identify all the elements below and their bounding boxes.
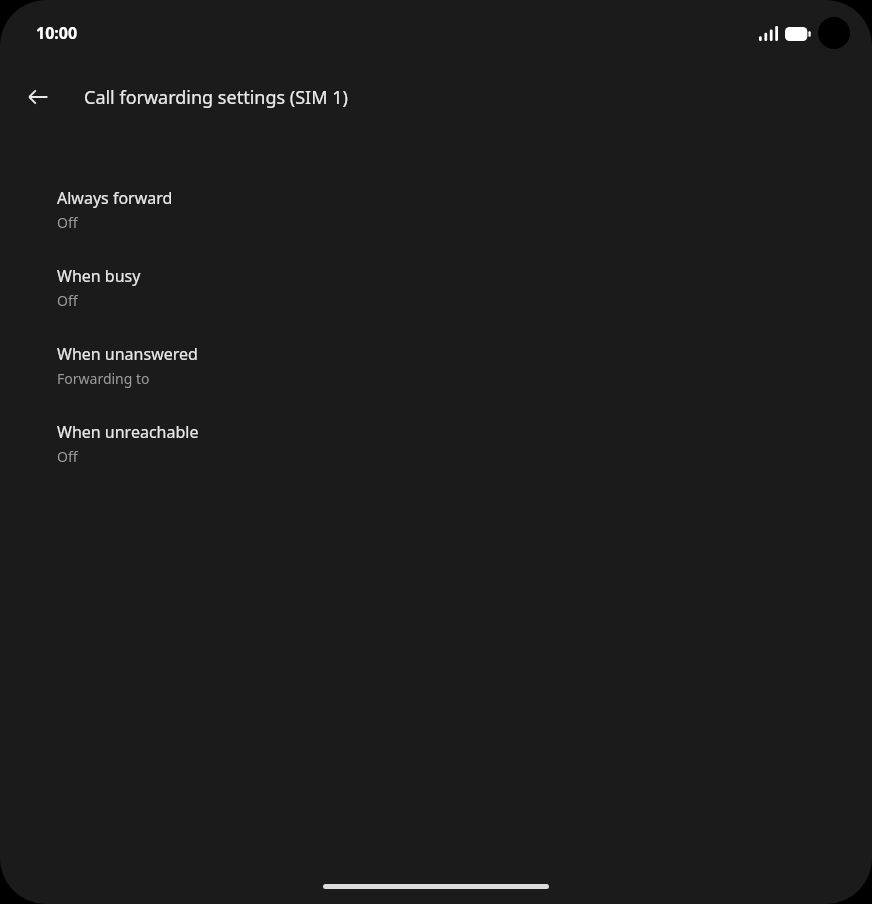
button[interactable]: When unreachable [0, 417, 872, 495]
staticText: Off [57, 291, 78, 310]
staticText: Off [57, 447, 78, 466]
staticText: Call forwarding settings (SIM 1) [84, 85, 348, 110]
button[interactable]: Always forward [0, 183, 872, 261]
button[interactable]: When unanswered [0, 339, 872, 417]
staticText: When unanswered [57, 343, 198, 365]
staticText: When busy [57, 265, 141, 287]
button[interactable]: Back [14, 73, 62, 121]
staticText: When unreachable [57, 421, 199, 443]
button[interactable]: When busy [0, 261, 872, 339]
staticText: Off [57, 213, 78, 232]
staticText: 10:00 [36, 22, 78, 44]
staticText: Forwarding to [57, 369, 150, 388]
staticText: Always forward [57, 187, 173, 209]
